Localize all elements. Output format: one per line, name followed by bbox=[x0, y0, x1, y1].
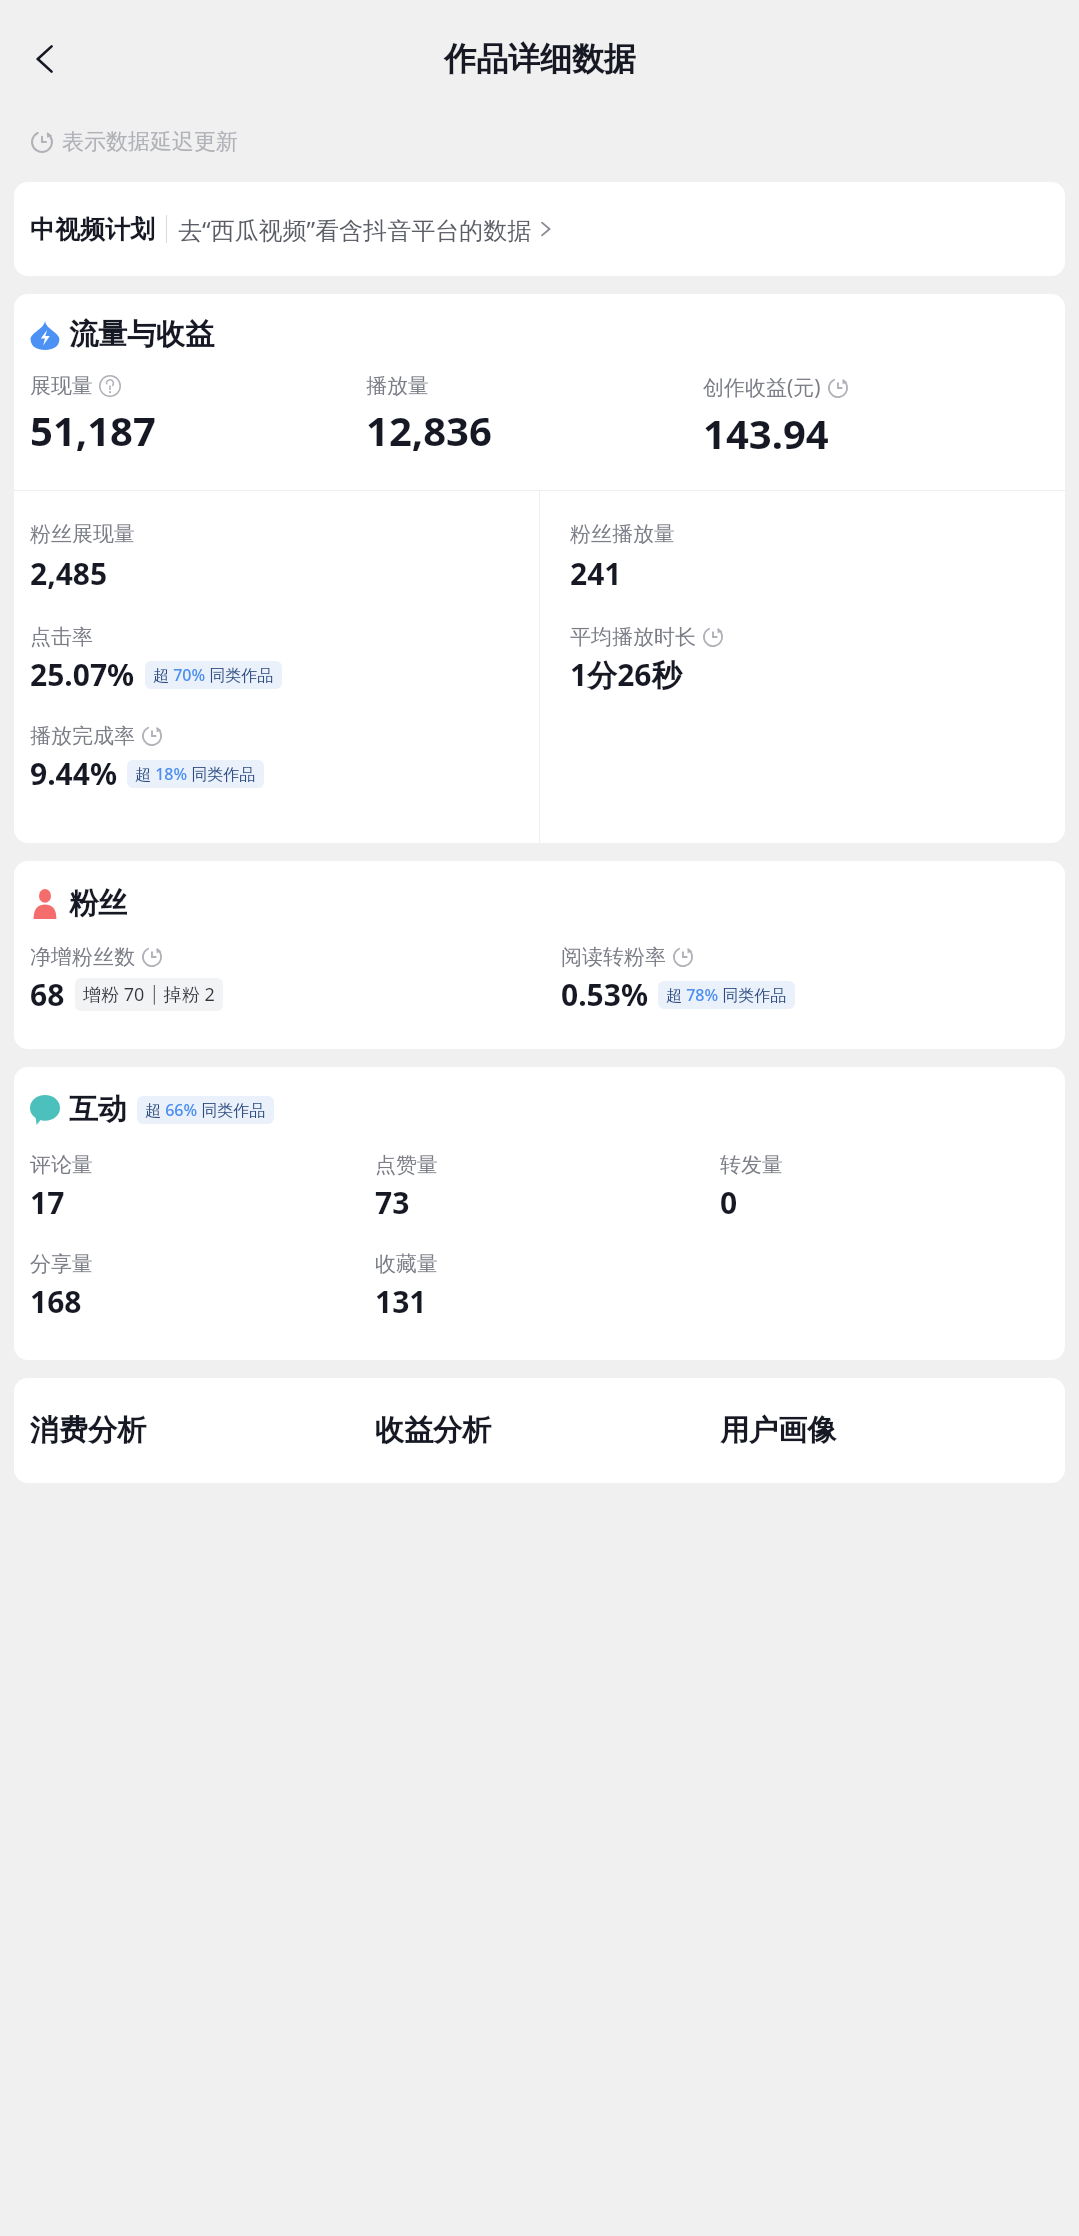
staticText: 展现量 bbox=[30, 373, 93, 399]
staticText: 消费分析 bbox=[30, 1412, 146, 1449]
staticText: 分享量 bbox=[30, 1251, 93, 1277]
staticText: 用户画像 bbox=[720, 1412, 836, 1449]
staticText: 超 18% 同类作品 bbox=[135, 763, 256, 785]
staticText: 去“西瓜视频”看含抖音平台的数据 bbox=[178, 213, 532, 246]
button[interactable]: 收益分析 bbox=[375, 1412, 720, 1449]
staticText: 增粉 70 ⏐ 掉粉 2 bbox=[83, 982, 215, 1007]
staticText: 143.94 bbox=[703, 406, 829, 460]
staticText: 转发量 bbox=[720, 1152, 783, 1178]
staticText: 收藏量 bbox=[375, 1251, 438, 1277]
staticText: 平均播放时长 bbox=[570, 624, 696, 650]
staticText: 超 70% 同类作品 bbox=[153, 664, 274, 686]
button[interactable]: 中视频计划 bbox=[14, 182, 1065, 276]
staticText: 收益分析 bbox=[375, 1412, 491, 1449]
staticText: 中视频计划 bbox=[30, 214, 155, 245]
staticText: 51,187 bbox=[30, 403, 156, 457]
staticText: 流量与收益 bbox=[69, 316, 214, 353]
staticText: 超 78% 同类作品 bbox=[666, 984, 787, 1006]
staticText: 作品详细数据 bbox=[444, 39, 636, 79]
staticText: 168 bbox=[30, 1281, 82, 1322]
staticText: 播放量 bbox=[366, 373, 429, 399]
staticText: 阅读转粉率 bbox=[561, 944, 666, 970]
staticText: 粉丝展现量 bbox=[30, 521, 135, 547]
staticText: 1分26秒 bbox=[570, 654, 682, 695]
staticText: 25.07% bbox=[30, 654, 135, 695]
button[interactable]: 消费分析 bbox=[30, 1412, 375, 1449]
staticText: 创作收益(元) bbox=[703, 373, 821, 402]
staticText: 9.44% bbox=[30, 753, 117, 794]
staticText: 粉丝播放量 bbox=[570, 521, 675, 547]
staticText: 超 66% 同类作品 bbox=[145, 1099, 266, 1121]
staticText: 68 bbox=[30, 974, 65, 1015]
staticText: 净增粉丝数 bbox=[30, 944, 135, 970]
staticText: 0 bbox=[720, 1182, 738, 1223]
staticText: 互动 bbox=[69, 1091, 127, 1128]
staticText: 播放完成率 bbox=[30, 723, 135, 749]
staticText: 73 bbox=[375, 1182, 410, 1223]
staticText: 241 bbox=[570, 553, 622, 594]
staticText: 131 bbox=[375, 1281, 427, 1322]
staticText: 2,485 bbox=[30, 553, 108, 594]
staticText: 评论量 bbox=[30, 1152, 93, 1178]
staticText: 点击率 bbox=[30, 624, 93, 650]
button[interactable]: 用户画像 bbox=[720, 1412, 1065, 1449]
staticText: 点赞量 bbox=[375, 1152, 438, 1178]
staticText: 粉丝 bbox=[69, 885, 127, 922]
staticText: 0.53% bbox=[561, 974, 648, 1015]
staticText: 17 bbox=[30, 1182, 65, 1223]
staticText: 12,836 bbox=[366, 403, 492, 457]
staticText: 表示数据延迟更新 bbox=[62, 128, 238, 156]
button[interactable]: Back bbox=[14, 28, 76, 90]
